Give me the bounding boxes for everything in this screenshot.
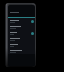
button[interactable] [8, 48, 35, 54]
button[interactable]: Toggle [31, 32, 34, 35]
button[interactable]: Toggle [31, 20, 34, 23]
button[interactable] [8, 24, 35, 30]
button[interactable] [8, 36, 35, 42]
button[interactable]: Toggle [8, 30, 35, 36]
button[interactable] [8, 42, 35, 48]
button[interactable] [8, 8, 35, 17]
button[interactable]: Toggle [8, 18, 35, 24]
